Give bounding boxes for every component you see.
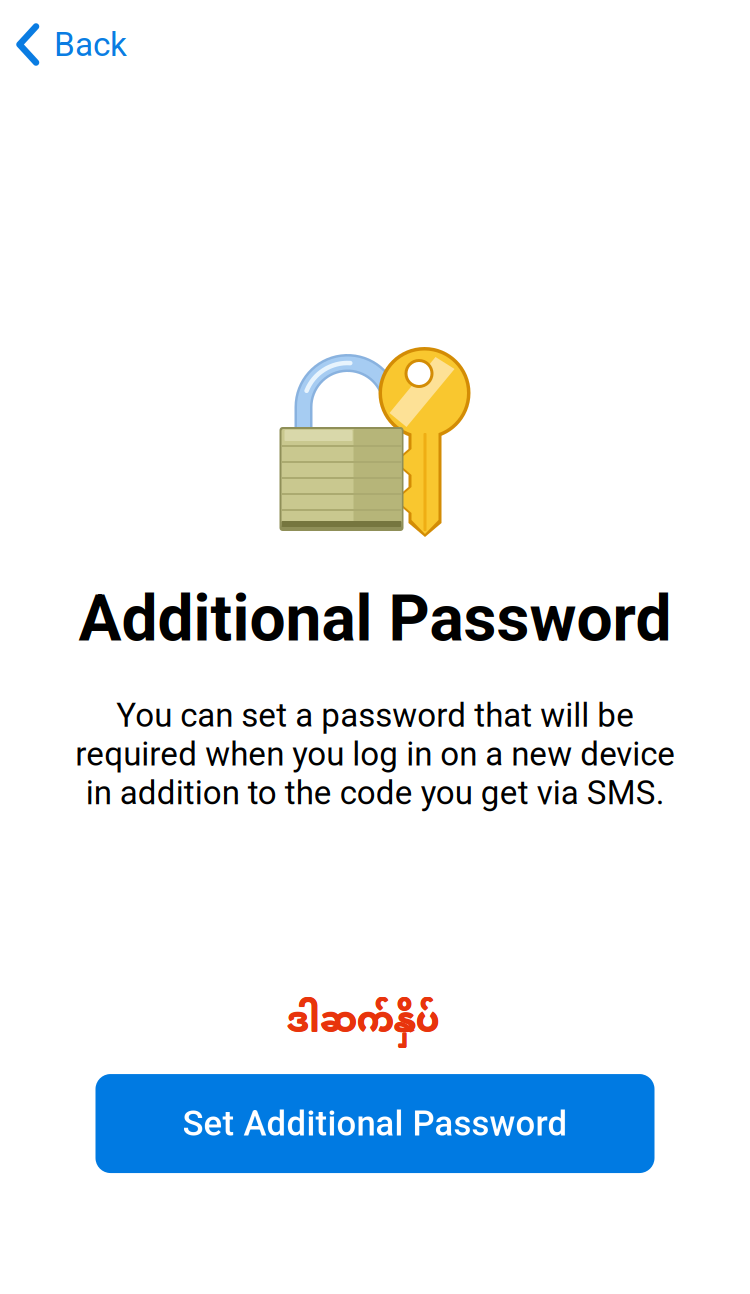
staticText: You can set a password that will be requ…: [75, 696, 675, 812]
staticText: ဒါဆက်နှိပ်: [287, 987, 439, 1059]
staticText: Set Additional Password: [182, 1103, 567, 1144]
button[interactable]: Set Additional Password: [95, 1074, 654, 1173]
staticText: Back: [54, 25, 127, 64]
staticText: Additional Password: [78, 581, 671, 656]
staticText: ဒါဆက်နှိပ်: [287, 988, 439, 1061]
button[interactable]: Back: [0, 0, 141, 83]
staticText: ဒါဆက်နှိပ်: [288, 987, 440, 1060]
staticText: ဒါဆက်နှိပ်: [286, 987, 438, 1060]
